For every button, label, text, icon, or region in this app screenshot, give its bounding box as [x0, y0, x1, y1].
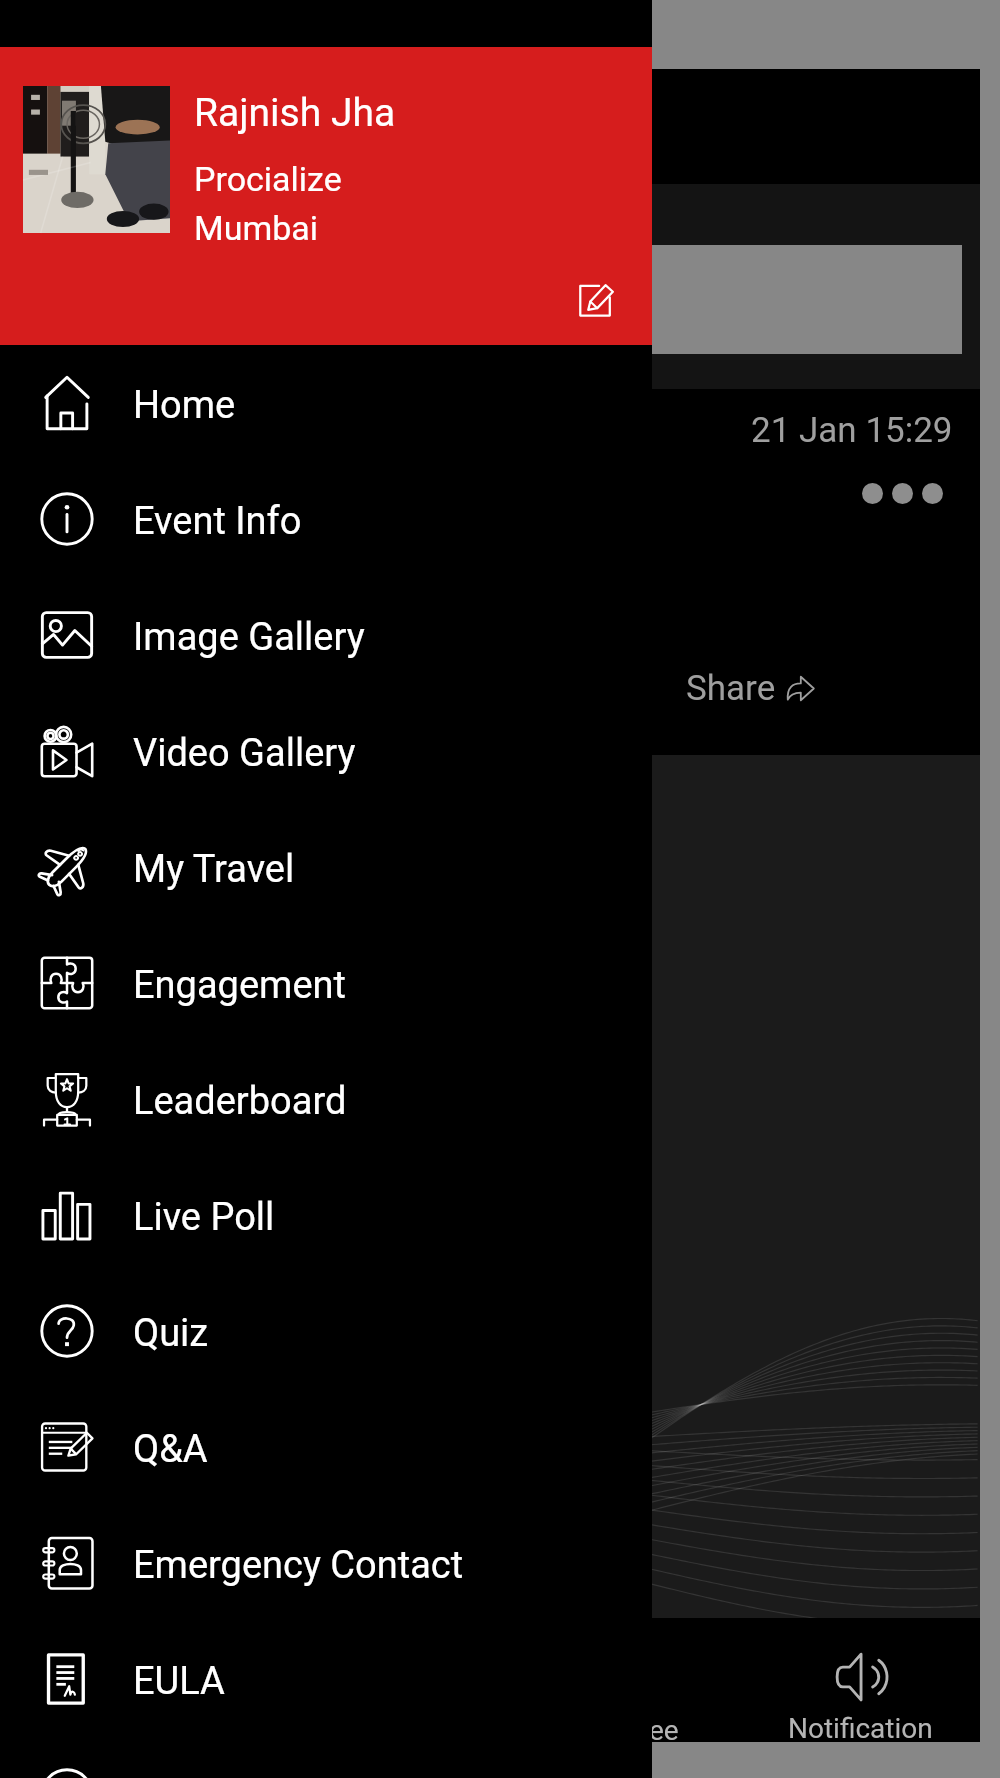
- button[interactable]: Feedback: [0, 1737, 652, 1778]
- staticText: EULA: [133, 1659, 225, 1704]
- button[interactable]: Q&A: [0, 1389, 652, 1505]
- other: Notification: [834, 1651, 886, 1703]
- button[interactable]: Quiz: [0, 1273, 652, 1389]
- staticText: Event Info: [133, 499, 302, 544]
- staticText: Image Gallery: [133, 615, 365, 660]
- button[interactable]: Image Gallery: [0, 577, 652, 693]
- staticText: Q&A: [133, 1427, 208, 1472]
- staticText: Mumbai: [194, 208, 319, 248]
- staticText: Leaderboard: [133, 1079, 347, 1124]
- button[interactable]: Home: [0, 345, 652, 461]
- staticText: Quiz: [133, 1311, 209, 1356]
- staticText: ee: [649, 1714, 679, 1747]
- button[interactable]: My Travel: [0, 809, 652, 925]
- button[interactable]: Emergency Contact: [0, 1505, 652, 1621]
- button[interactable]: Event Info: [0, 461, 652, 577]
- staticText: My Travel: [133, 847, 295, 892]
- staticText: Engagement: [133, 963, 346, 1008]
- staticText: Home: [133, 383, 236, 428]
- staticText: Emergency Contact: [133, 1543, 464, 1588]
- button[interactable]: Live Poll: [0, 1157, 652, 1273]
- button[interactable]: Share: [686, 668, 816, 709]
- staticText: 21 Jan 15:29: [751, 410, 953, 451]
- staticText: Procialize: [194, 159, 342, 199]
- button[interactable]: Video Gallery: [0, 693, 652, 809]
- button[interactable]: Edit profile: [568, 269, 626, 327]
- staticText: Rajnish Jha: [194, 90, 396, 136]
- staticText: Video Gallery: [133, 731, 356, 776]
- staticText: Notification: [788, 1712, 933, 1742]
- button[interactable]: Notification: [770, 1618, 950, 1742]
- button[interactable]: Engagement: [0, 925, 652, 1041]
- staticText: Live Poll: [133, 1195, 275, 1240]
- button[interactable]: Leaderboard: [0, 1041, 652, 1157]
- staticText: Share: [686, 668, 776, 709]
- button[interactable]: EULA: [0, 1621, 652, 1737]
